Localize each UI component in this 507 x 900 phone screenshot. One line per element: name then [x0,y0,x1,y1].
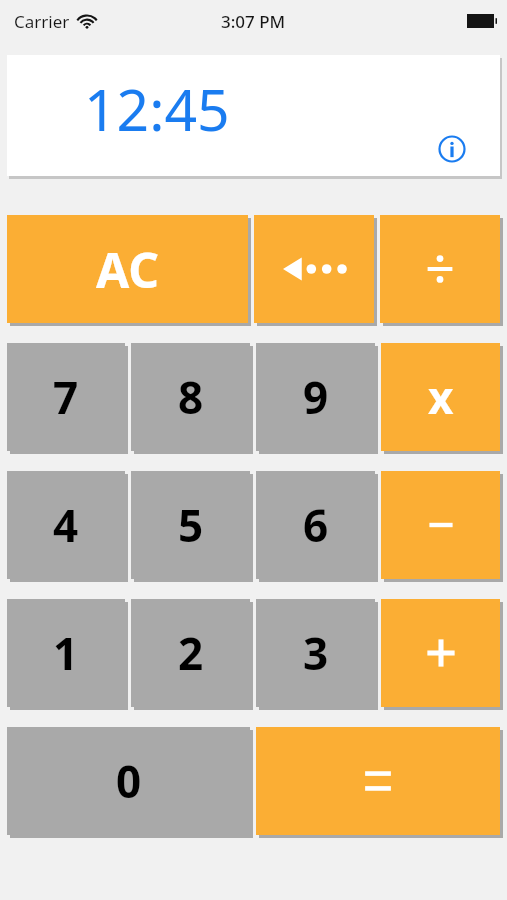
staticText: 3:07 PM [221,10,286,33]
staticText: 7 [53,367,79,427]
button[interactable]: 7 [7,343,125,451]
button[interactable]: 9 [256,343,375,451]
staticText: 3 [303,623,329,683]
button[interactable]: Add [381,599,500,707]
staticText: 2 [178,623,204,683]
staticText: Carrier [14,10,70,33]
button[interactable]: 12:45 [7,55,500,176]
staticText: 5 [178,495,204,555]
button[interactable]: 2 [131,599,250,707]
staticText: 6 [303,495,329,555]
staticText: 8 [178,367,204,427]
button[interactable]: 4 [7,471,125,579]
button[interactable]: 1 [7,599,125,707]
staticText: 0 [116,751,142,811]
button[interactable]: 6 [256,471,375,579]
button[interactable]: Backspace [254,215,374,323]
button[interactable]: 0 [7,727,250,835]
button[interactable]: Info [437,134,467,164]
staticText: AC [96,237,160,302]
staticText: 4 [53,495,79,555]
button[interactable]: Subtract [381,471,500,579]
button[interactable]: x [381,343,500,451]
button[interactable]: 8 [131,343,250,451]
staticText: 1 [53,623,79,683]
staticText: x [428,367,454,427]
button[interactable]: 5 [131,471,250,579]
button[interactable]: 3 [256,599,375,707]
staticText: 12:45 [84,70,230,148]
button[interactable]: Equals [256,727,500,835]
staticText: 9 [303,367,329,427]
button[interactable]: Divide [380,215,500,323]
button[interactable]: AC [7,215,248,323]
